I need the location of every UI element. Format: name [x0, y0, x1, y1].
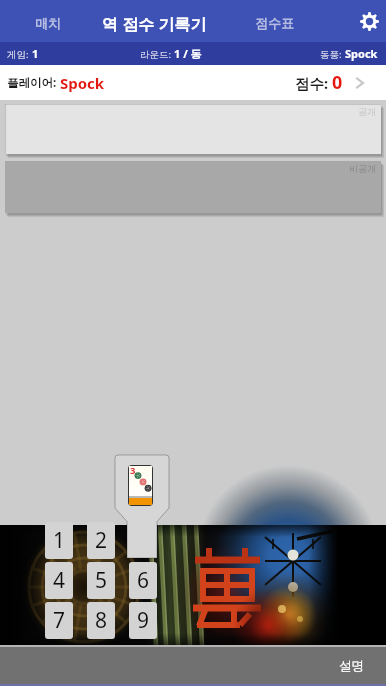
staticText: 1 / 동: [174, 46, 202, 61]
button[interactable]: 8: [87, 602, 115, 639]
staticText: 1: [32, 46, 39, 61]
button[interactable]: 4: [45, 562, 73, 599]
button[interactable]: 점수표: [213, 0, 336, 42]
button[interactable]: 7: [45, 602, 73, 639]
staticText: 0: [332, 70, 343, 95]
staticText: 라운드:: [140, 48, 174, 61]
staticText: 1: [53, 526, 66, 555]
staticText: 2: [95, 526, 108, 555]
staticText: 3: [130, 465, 136, 477]
staticText: 매치: [35, 15, 61, 31]
button[interactable]: 설명: [328, 647, 386, 684]
staticText: 점수:: [295, 73, 332, 93]
staticText: Spock: [345, 46, 378, 61]
button[interactable]: 공개: [5, 104, 381, 154]
staticText: 게임:: [7, 48, 32, 61]
button[interactable]: 역 점수 기록기: [96, 0, 213, 42]
staticText: 8: [95, 606, 108, 635]
staticText: 역 점수 기록기: [102, 13, 207, 35]
staticText: 동풍:: [320, 48, 345, 61]
button[interactable]: 2: [87, 522, 115, 559]
button[interactable]: 매치: [0, 0, 96, 42]
staticText: 공개: [358, 106, 376, 117]
staticText: 9: [137, 606, 150, 635]
staticText: 설명: [339, 658, 364, 674]
button[interactable]: 플레이어:: [0, 65, 386, 100]
button[interactable]: 9: [129, 602, 157, 639]
staticText: 4: [53, 566, 66, 595]
staticText: 5: [95, 566, 108, 595]
button[interactable]: Settings: [352, 4, 386, 38]
staticText: 점수표: [255, 15, 294, 31]
staticText: Spock: [60, 73, 105, 93]
button[interactable]: 1: [45, 522, 73, 559]
staticText: 플레이어:: [7, 75, 60, 91]
staticText: 비공개: [349, 163, 376, 174]
staticText: 6: [137, 566, 150, 595]
button[interactable]: 5: [87, 562, 115, 599]
staticText: 7: [53, 606, 66, 635]
button[interactable]: 6: [129, 562, 157, 599]
